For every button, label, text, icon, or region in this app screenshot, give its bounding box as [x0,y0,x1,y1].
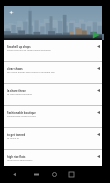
button[interactable]: high rise flats [4,150,102,166]
staticText: clear shows [7,67,23,71]
staticText: to touch ar [7,136,20,139]
button[interactable]: Recents [65,168,78,181]
staticText: sell more brands with drugs in multiple … [7,70,55,73]
button[interactable]: Seashell up shops [4,40,102,61]
staticText: high rise flats [7,155,26,159]
staticText: Fashionable boutique [7,111,36,115]
staticText: Fashionable clothes shops [7,114,36,117]
button[interactable]: Back [8,168,21,181]
staticText: shops that aim to target doing business [7,48,51,51]
staticText: to stop doing business [7,92,32,95]
staticText: la share these [7,89,26,93]
button[interactable]: Home [48,168,61,181]
button[interactable]: Fashionable boutique [4,106,102,127]
staticText: multi story apartments [7,158,33,161]
staticText: Seashell up shops [7,45,31,49]
button[interactable]: clear shows [4,62,102,83]
button[interactable]: Menu [30,168,43,181]
staticText: to get tanned [7,133,26,137]
button[interactable]: la share these [4,84,102,105]
button[interactable]: to get tanned [4,128,102,149]
